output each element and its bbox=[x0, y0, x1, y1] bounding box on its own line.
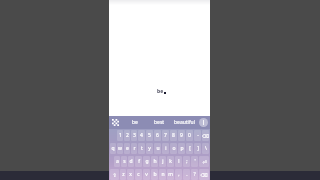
button[interactable]: o bbox=[170, 143, 177, 154]
button[interactable]: 6 bbox=[154, 130, 161, 141]
button[interactable]: d bbox=[128, 156, 134, 167]
button[interactable]: s bbox=[121, 156, 127, 167]
button[interactable]: Keyboard themes bbox=[109, 116, 122, 129]
button[interactable]: 8 bbox=[170, 130, 177, 141]
button[interactable]: z bbox=[120, 169, 126, 180]
staticText: w bbox=[118, 145, 122, 152]
staticText: 6 bbox=[156, 132, 159, 139]
staticText: l bbox=[178, 158, 180, 165]
staticText: ⌫ bbox=[200, 172, 208, 178]
staticText: 4 bbox=[140, 132, 143, 139]
button[interactable]: q bbox=[110, 143, 116, 154]
button[interactable]: p bbox=[178, 143, 185, 154]
button[interactable]: ⇧ bbox=[110, 169, 119, 180]
staticText: h bbox=[153, 158, 157, 165]
staticText: q bbox=[111, 145, 115, 152]
button[interactable]: i bbox=[162, 143, 169, 154]
button[interactable]: n bbox=[159, 169, 166, 180]
staticText: \ bbox=[205, 145, 207, 152]
button[interactable]: ⏎ bbox=[199, 156, 209, 167]
staticText: c bbox=[137, 171, 140, 178]
staticText: t bbox=[141, 145, 143, 152]
button[interactable]: a bbox=[114, 156, 120, 167]
button[interactable]: h bbox=[151, 156, 158, 167]
staticText: y bbox=[148, 145, 151, 152]
staticText: beautiful bbox=[174, 119, 195, 126]
staticText: 9 bbox=[180, 132, 183, 139]
staticText: , bbox=[178, 171, 180, 178]
button[interactable]: ] bbox=[194, 143, 201, 154]
staticText: 7 bbox=[164, 132, 167, 139]
button[interactable]: ; bbox=[183, 156, 190, 167]
staticText: ⇧ bbox=[112, 172, 117, 178]
staticText: e bbox=[126, 145, 129, 152]
button[interactable]: 2 bbox=[124, 130, 130, 141]
staticText: 0 bbox=[188, 132, 191, 139]
staticText: 2 bbox=[126, 132, 129, 139]
button[interactable]: [ bbox=[186, 143, 193, 154]
button[interactable]: - bbox=[194, 130, 201, 141]
staticText: x bbox=[129, 171, 132, 178]
button[interactable]: l bbox=[175, 156, 182, 167]
button[interactable]: \ bbox=[202, 143, 209, 154]
staticText: ; bbox=[186, 158, 188, 165]
button[interactable]: v bbox=[143, 169, 150, 180]
button[interactable]: 0 bbox=[186, 130, 193, 141]
staticText: z bbox=[122, 171, 125, 178]
staticText: m bbox=[168, 171, 173, 178]
button[interactable]: 5 bbox=[146, 130, 153, 141]
staticText: [ bbox=[189, 145, 191, 152]
button[interactable]: e bbox=[124, 143, 130, 154]
staticText: r bbox=[133, 145, 136, 152]
staticText: p bbox=[180, 145, 184, 152]
staticText: ⌫ bbox=[202, 133, 209, 139]
staticText: ⏎ bbox=[202, 159, 207, 165]
staticText: 5 bbox=[148, 132, 151, 139]
button[interactable]: be bbox=[122, 116, 147, 129]
button[interactable]: ' bbox=[191, 156, 198, 167]
button[interactable]: f bbox=[135, 156, 142, 167]
staticText: u bbox=[156, 145, 160, 152]
staticText: 8 bbox=[172, 132, 175, 139]
button[interactable]: best bbox=[147, 116, 172, 129]
button[interactable]: ? bbox=[191, 169, 198, 180]
button[interactable]: . bbox=[183, 169, 190, 180]
staticText: i bbox=[165, 145, 167, 152]
staticText: k bbox=[169, 158, 172, 165]
button[interactable]: r bbox=[131, 143, 137, 154]
button[interactable]: 7 bbox=[162, 130, 169, 141]
button[interactable]: 1 bbox=[117, 130, 123, 141]
staticText: b bbox=[153, 171, 157, 178]
button[interactable]: k bbox=[167, 156, 174, 167]
button[interactable]: 3 bbox=[131, 130, 137, 141]
button[interactable]: c bbox=[135, 169, 142, 180]
button[interactable]: ⌫ bbox=[202, 130, 209, 141]
staticText: g bbox=[145, 158, 149, 165]
staticText: be bbox=[157, 88, 164, 95]
button[interactable]: ⌫ bbox=[199, 169, 209, 180]
staticText: s bbox=[123, 158, 126, 165]
button[interactable]: beautiful bbox=[172, 116, 197, 129]
button[interactable]: g bbox=[143, 156, 150, 167]
button[interactable]: m bbox=[167, 169, 174, 180]
button[interactable]: j bbox=[159, 156, 166, 167]
button[interactable]: More options bbox=[197, 116, 210, 129]
staticText: best bbox=[154, 119, 165, 126]
staticText: - bbox=[197, 132, 199, 139]
staticText: n bbox=[161, 171, 165, 178]
button[interactable]: x bbox=[127, 169, 134, 180]
staticText: ? bbox=[193, 171, 196, 178]
button[interactable]: 9 bbox=[178, 130, 185, 141]
staticText: be bbox=[132, 119, 138, 126]
button[interactable]: 4 bbox=[138, 130, 145, 141]
button[interactable]: , bbox=[175, 169, 182, 180]
staticText: v bbox=[145, 171, 148, 178]
staticText: ' bbox=[194, 158, 196, 165]
staticText: 3 bbox=[133, 132, 136, 139]
button[interactable]: b bbox=[151, 169, 158, 180]
button[interactable]: w bbox=[117, 143, 123, 154]
staticText: a bbox=[116, 158, 119, 165]
button[interactable]: y bbox=[146, 143, 153, 154]
button[interactable]: t bbox=[138, 143, 145, 154]
button[interactable]: u bbox=[154, 143, 161, 154]
